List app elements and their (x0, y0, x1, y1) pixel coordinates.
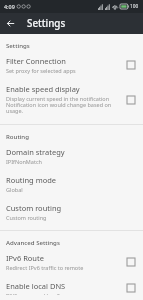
staticText: Domain strategy (6, 147, 65, 157)
staticText: Filter Connection (6, 56, 66, 66)
staticText: 100 (130, 3, 139, 10)
button[interactable]: Enable speed display (0, 79, 143, 120)
button[interactable]: Routing mode (0, 170, 143, 198)
staticText: 4:09 (4, 3, 15, 10)
staticText: Routing mode (6, 175, 57, 185)
button[interactable]: IPv6 Route (0, 248, 143, 276)
staticText: Display current speed in the notificatio… (6, 95, 119, 115)
staticText: Settings (27, 17, 66, 30)
button[interactable]: Domain strategy (0, 142, 143, 170)
button[interactable]: Enable speed display checkbox (124, 93, 138, 107)
button[interactable]: IPv6 Route checkbox (124, 255, 138, 269)
staticText: DNS processed by v2ray core (6, 292, 81, 295)
button[interactable]: Filter Connection checkbox (124, 58, 138, 72)
staticText: Enable local DNS (6, 281, 66, 291)
staticText: Custom routing (6, 203, 62, 213)
staticText: Advanced Settings (6, 238, 60, 246)
staticText: Custom routing (6, 214, 47, 221)
staticText: Set proxy for selected apps (6, 67, 76, 74)
staticText: IPIfNonMatch (6, 158, 42, 165)
button[interactable]: Custom routing (0, 198, 143, 226)
staticText: Routing (6, 132, 29, 140)
staticText: Enable speed display (6, 84, 80, 94)
button[interactable]: Filter Connection (0, 51, 143, 79)
button[interactable]: Enable local DNS (0, 276, 143, 300)
staticText: Settings (6, 41, 30, 49)
staticText: Redirect IPv6 traffic to remote (6, 264, 84, 271)
staticText: IPv6 Route (6, 253, 44, 263)
button[interactable]: Back (0, 13, 21, 34)
button[interactable]: Enable local DNS checkbox (124, 281, 138, 295)
staticText: Global (6, 186, 23, 193)
